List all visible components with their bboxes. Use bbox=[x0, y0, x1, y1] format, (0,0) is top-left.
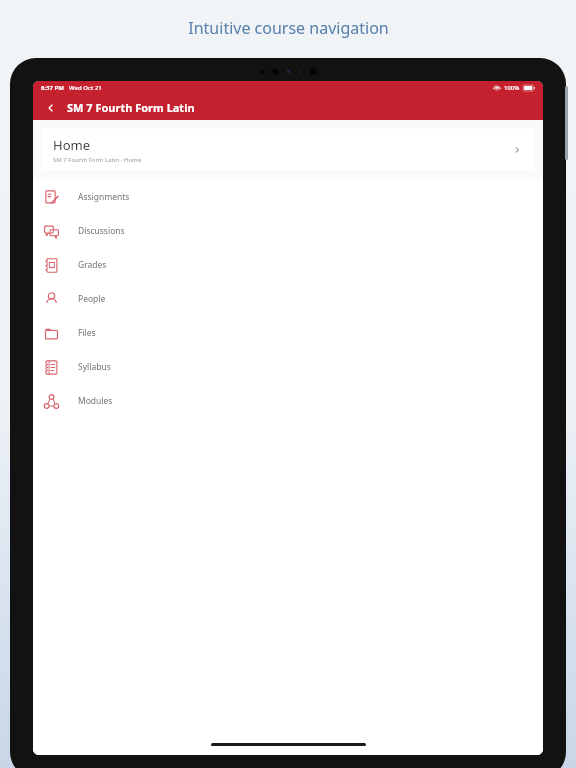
staticText: Grades bbox=[78, 259, 107, 271]
staticText: 100% bbox=[504, 84, 520, 92]
button[interactable]: Assignments bbox=[33, 180, 543, 214]
staticText: Files bbox=[78, 327, 96, 339]
staticText: Intuitive course navigation bbox=[188, 17, 389, 39]
staticText: Syllabus bbox=[78, 361, 111, 373]
button[interactable]: Home bbox=[42, 129, 534, 170]
staticText: People bbox=[78, 293, 106, 305]
staticText: Modules bbox=[78, 395, 113, 407]
button[interactable]: Files bbox=[33, 316, 543, 350]
staticText: 6:37 PM bbox=[41, 84, 64, 92]
staticText: SM 7 Fourth Form Latin bbox=[67, 100, 195, 115]
button[interactable]: Grades bbox=[33, 248, 543, 282]
button[interactable]: Back bbox=[41, 98, 61, 118]
button[interactable]: Discussions bbox=[33, 214, 543, 248]
staticText: Assignments bbox=[78, 191, 130, 203]
staticText: Home bbox=[53, 136, 90, 154]
staticText: Wed Oct 21 bbox=[69, 84, 102, 92]
button[interactable]: Syllabus bbox=[33, 350, 543, 384]
button[interactable]: Modules bbox=[33, 384, 543, 418]
button[interactable]: People bbox=[33, 282, 543, 316]
staticText: SM 7 Fourth Form Latin - Home bbox=[53, 156, 142, 164]
staticText: Discussions bbox=[78, 225, 125, 237]
